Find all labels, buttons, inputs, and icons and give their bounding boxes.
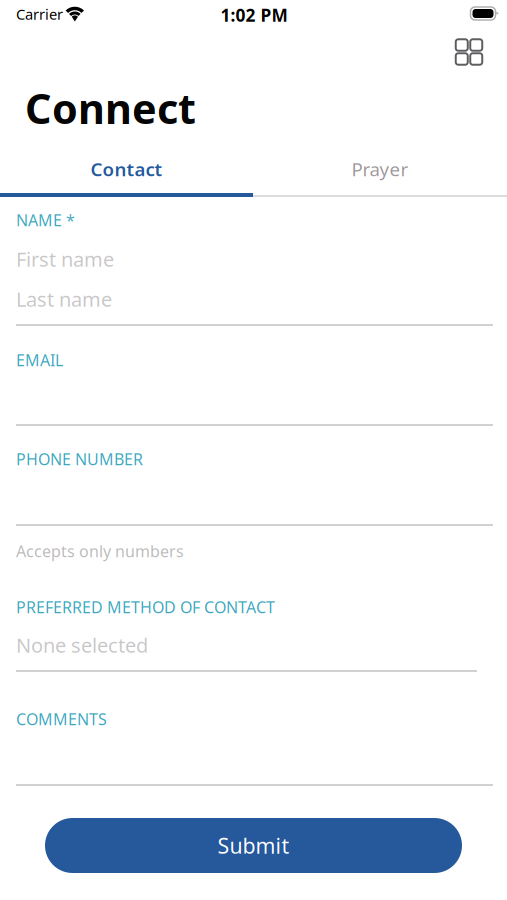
- staticText: Last name: [16, 286, 112, 312]
- button[interactable]: First name: [16, 243, 493, 275]
- staticText: COMMENTS: [16, 708, 107, 730]
- staticText: NAME *: [16, 209, 75, 231]
- staticText: PHONE NUMBER: [16, 448, 143, 470]
- button[interactable]: Grid view: [447, 30, 491, 74]
- button[interactable]: Last name: [16, 283, 493, 315]
- button[interactable]: Submit: [45, 818, 462, 873]
- staticText: 1:02 PM: [220, 3, 287, 26]
- staticText: First name: [16, 246, 114, 272]
- staticText: PREFERRED METHOD OF CONTACT: [16, 596, 275, 618]
- staticText: Connect: [25, 81, 196, 135]
- staticText: Contact: [90, 157, 162, 181]
- staticText: Submit: [217, 831, 289, 860]
- staticText: EMAIL: [16, 349, 63, 371]
- staticText: Carrier: [16, 4, 63, 24]
- button[interactable]: None selected: [16, 629, 477, 661]
- staticText: Prayer: [351, 157, 408, 181]
- button[interactable]: Contact: [0, 148, 253, 197]
- staticText: Accepts only numbers: [16, 540, 184, 562]
- button[interactable]: Prayer: [253, 148, 507, 197]
- staticText: None selected: [16, 632, 148, 658]
